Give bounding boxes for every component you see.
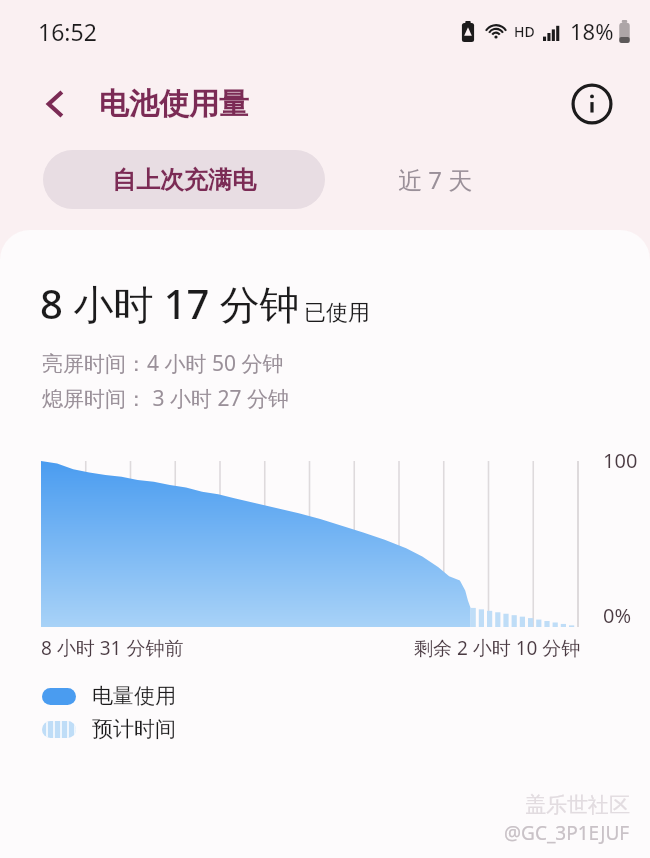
staticText: @GC_3P1EJUF bbox=[504, 820, 630, 846]
staticText: 亮屏时间：4 小时 50 分钟 bbox=[42, 349, 284, 378]
staticText: 0% bbox=[603, 602, 632, 629]
staticText: 16:52 bbox=[38, 16, 97, 47]
staticText: 盖乐世社区 bbox=[525, 792, 630, 818]
staticText: HD bbox=[514, 22, 535, 41]
staticText: 18% bbox=[570, 16, 614, 46]
button[interactable]: 近 7 天 bbox=[325, 150, 545, 209]
button[interactable]: 自上次充满电 bbox=[43, 150, 325, 209]
staticText: 熄屏时间： 3 小时 27 分钟 bbox=[42, 384, 289, 413]
button[interactable]: Information bbox=[570, 82, 614, 126]
staticText: 电量使用 bbox=[92, 683, 176, 709]
staticText: 8 小时 31 分钟前 bbox=[41, 635, 184, 661]
staticText: 8 小时 17 分钟 bbox=[40, 276, 300, 331]
staticText: 自上次充满电 bbox=[112, 165, 256, 195]
staticText: 100 bbox=[603, 447, 638, 474]
staticText: 预计时间 bbox=[92, 716, 176, 742]
staticText: 已使用 bbox=[304, 299, 370, 327]
staticText: 近 7 天 bbox=[398, 163, 473, 196]
staticText: 电池使用量 bbox=[99, 85, 249, 123]
button[interactable]: Back bbox=[30, 81, 76, 127]
staticText: 剩余 2 小时 10 分钟 bbox=[414, 635, 581, 661]
